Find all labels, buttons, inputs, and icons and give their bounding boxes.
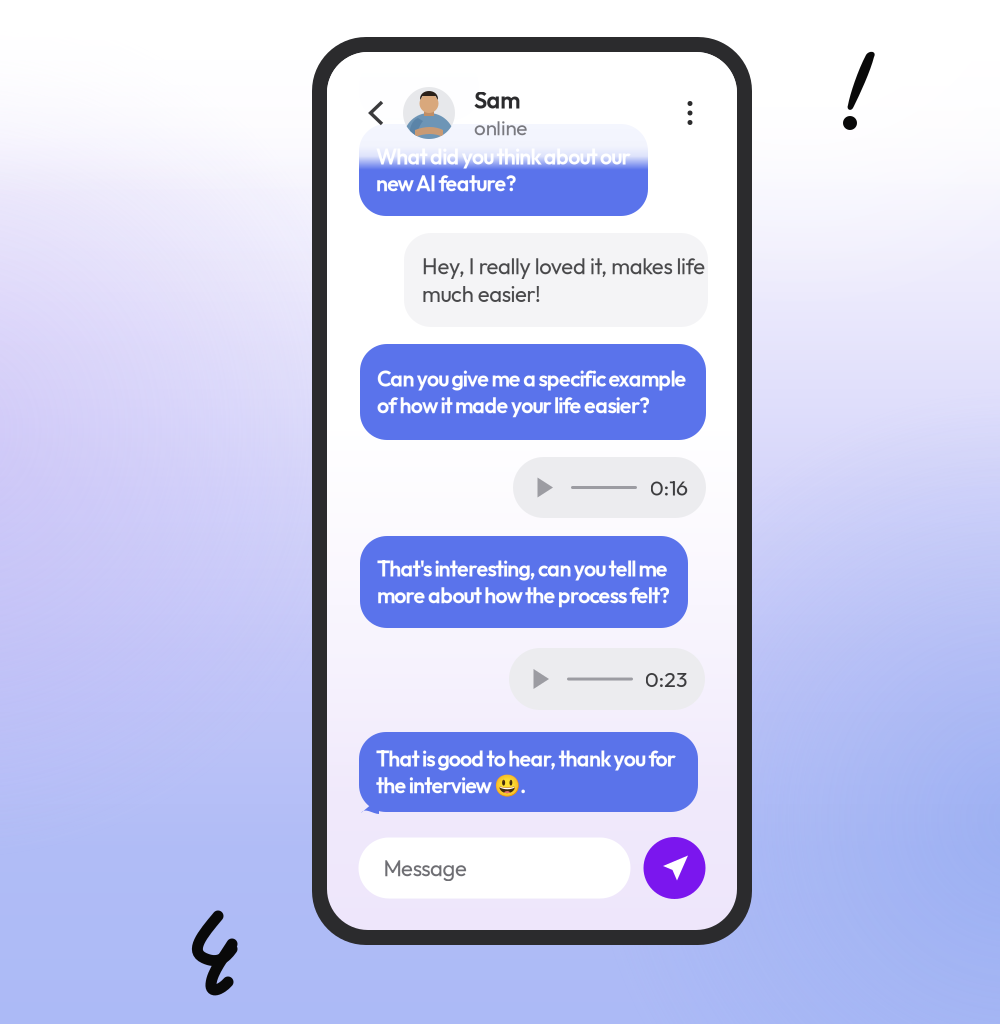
staticText: Hey, I really loved it, makes life much … bbox=[422, 252, 705, 308]
staticText: Hello bbox=[376, 76, 422, 102]
button[interactable]: More options bbox=[673, 90, 707, 136]
staticText: What did you think about our new AI feat… bbox=[376, 143, 630, 197]
button[interactable]: Play voice message 0:16 bbox=[513, 457, 706, 518]
staticText: 0:16 bbox=[650, 474, 688, 501]
staticText: Message bbox=[383, 854, 467, 882]
button[interactable]: Back bbox=[358, 91, 394, 135]
button[interactable]: Send bbox=[643, 837, 705, 899]
button[interactable]: Message bbox=[358, 837, 630, 898]
staticText: online bbox=[474, 115, 527, 141]
staticText: That's interesting, can you tell me more… bbox=[377, 555, 670, 609]
staticText: Sam bbox=[474, 85, 520, 115]
staticText: That is good to hear, thank you for the … bbox=[376, 745, 676, 799]
button[interactable]: Play voice message 0:23 bbox=[509, 648, 705, 710]
staticText: Can you give me a specific example of ho… bbox=[377, 365, 687, 419]
staticText: 0:23 bbox=[645, 666, 687, 692]
